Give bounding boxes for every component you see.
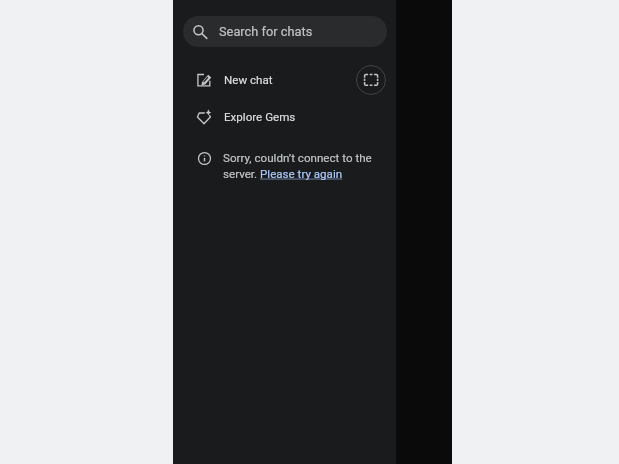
button[interactable]: Explore Gems [173, 102, 396, 132]
button[interactable]: Select screenshot [356, 65, 386, 95]
staticText: Search for chats [219, 24, 313, 39]
staticText: Explore Gems [224, 110, 296, 124]
staticText: Sorry, couldn’t connect to the server. P… [223, 151, 386, 181]
button[interactable]: Search for chats [183, 16, 387, 47]
button[interactable]: New chat [173, 65, 396, 95]
staticText: New chat [224, 73, 273, 87]
